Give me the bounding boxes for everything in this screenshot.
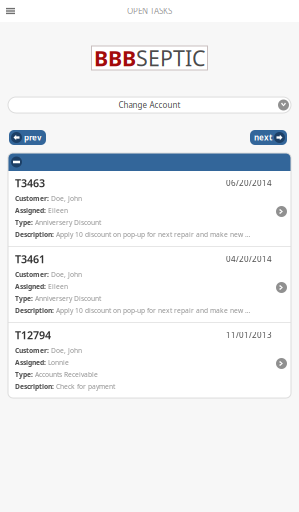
- button[interactable]: T3461: [8, 247, 291, 322]
- staticText: Customer:: [15, 194, 49, 203]
- staticText: Doe, John: [49, 270, 82, 279]
- staticText: Assigned:: [15, 358, 46, 367]
- staticText: Eileen: [46, 206, 68, 215]
- staticText: Lonnie: [46, 358, 69, 367]
- staticText: BBB: [94, 44, 136, 72]
- button[interactable]: T3463: [8, 171, 291, 246]
- staticText: Check for payment: [54, 382, 115, 391]
- staticText: Customer:: [15, 346, 49, 355]
- button[interactable]: Change Account: [0, 70, 299, 113]
- staticText: T3463: [15, 176, 45, 190]
- staticText: Type:: [15, 294, 33, 303]
- staticText: Assigned:: [15, 206, 46, 215]
- staticText: SEPTIC: [136, 44, 205, 72]
- staticText: Type:: [15, 218, 33, 227]
- staticText: Anniversery Discount: [33, 218, 101, 227]
- button[interactable]: prev: [9, 130, 46, 145]
- staticText: Description:: [15, 230, 54, 239]
- staticText: Description:: [15, 306, 54, 315]
- staticText: T3461: [15, 252, 45, 266]
- staticText: prev: [24, 132, 42, 143]
- staticText: Assigned:: [15, 282, 46, 291]
- staticText: Doe, John: [49, 194, 82, 203]
- staticText: Type:: [15, 370, 33, 379]
- button[interactable]: Menu: [0, 0, 21, 22]
- staticText: 06/20/2014: [226, 178, 272, 188]
- staticText: T12794: [15, 328, 51, 342]
- staticText: Apply 10 discount on pop-up for next rep…: [54, 230, 250, 239]
- staticText: Customer:: [15, 270, 49, 279]
- staticText: OPEN TASKS: [127, 6, 172, 16]
- staticText: 11/01/2013: [226, 330, 272, 340]
- staticText: Accounts Receivable: [33, 370, 98, 379]
- staticText: Eileen: [46, 282, 68, 291]
- button[interactable]: next: [250, 130, 287, 145]
- staticText: Doe, John: [49, 346, 82, 355]
- staticText: 04/20/2014: [226, 254, 272, 264]
- staticText: Change Account: [118, 100, 180, 110]
- staticText: Anniversery Discount: [33, 294, 101, 303]
- staticText: Apply 10 discount on pop-up for next rep…: [54, 306, 250, 315]
- staticText: Description:: [15, 382, 54, 391]
- button[interactable]: T12794: [8, 323, 291, 398]
- staticText: next: [254, 132, 272, 143]
- button[interactable]: Collapse section: [8, 153, 291, 171]
